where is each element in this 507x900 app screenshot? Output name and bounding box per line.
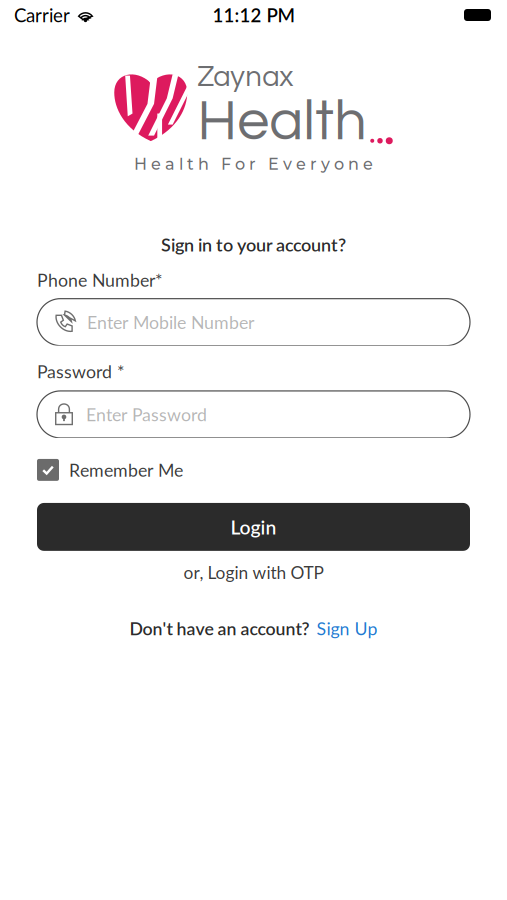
staticText: Health [197, 92, 366, 151]
staticText: Sign Up [316, 618, 377, 639]
button[interactable]: Enter Mobile Number [37, 299, 470, 346]
button[interactable]: Sign Up [316, 618, 377, 639]
staticText: Remember Me [69, 459, 183, 481]
staticText: Password * [37, 361, 125, 382]
button[interactable]: or, Login with OTP [37, 562, 470, 583]
staticText: Carrier [14, 4, 70, 26]
staticText: H e a l t h F o r E v e r y o n e [134, 154, 373, 174]
staticText: or, Login with OTP [183, 562, 323, 583]
staticText: 11:12 PM [212, 4, 294, 26]
staticText: Enter Password [86, 404, 207, 425]
button[interactable]: Login [37, 503, 470, 551]
button[interactable]: Remember Me [37, 459, 183, 481]
staticText: Sign in to your account? [161, 234, 346, 255]
staticText: Don't have an account? [129, 618, 309, 639]
staticText: Enter Mobile Number [87, 311, 254, 333]
staticText: Zaynax [197, 62, 293, 92]
staticText: Phone Number* [37, 269, 163, 291]
staticText: Login [230, 515, 276, 538]
button[interactable]: Enter Password [37, 391, 470, 438]
